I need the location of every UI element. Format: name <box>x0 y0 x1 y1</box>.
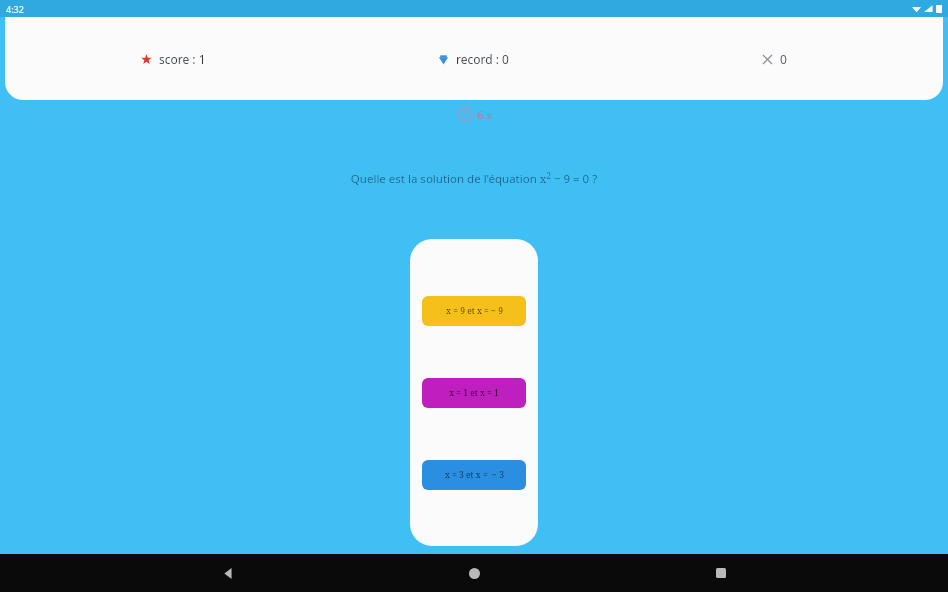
button[interactable]: x = 3 et x = − 3 <box>422 460 526 490</box>
staticText: 0 <box>780 51 787 67</box>
other: Timer <box>457 106 473 122</box>
button[interactable]: Lives <box>624 43 925 75</box>
other: Lives <box>763 55 772 64</box>
button[interactable]: x = 1 et x = 1 <box>422 378 526 408</box>
staticText: x = 1 et x = 1 <box>449 387 499 399</box>
staticText: x = 9 et x = − 9 <box>446 305 503 317</box>
button[interactable]: Home <box>455 554 493 592</box>
button[interactable]: Recent apps <box>702 554 740 592</box>
staticText: 6 s <box>477 107 492 122</box>
button[interactable]: Back <box>209 554 247 592</box>
button[interactable]: score : 1 <box>23 43 323 75</box>
staticText: score : 1 <box>159 51 206 67</box>
staticText: 4:32 <box>6 3 24 15</box>
staticText: Quelle est la solution de l'équation x2 … <box>40 170 908 186</box>
button[interactable]: x = 9 et x = − 9 <box>422 296 526 326</box>
staticText: x = 3 et x = − 3 <box>445 469 504 481</box>
button[interactable]: record : 0 <box>323 43 624 75</box>
button[interactable]: Timer <box>457 106 492 122</box>
staticText: record : 0 <box>456 51 509 67</box>
